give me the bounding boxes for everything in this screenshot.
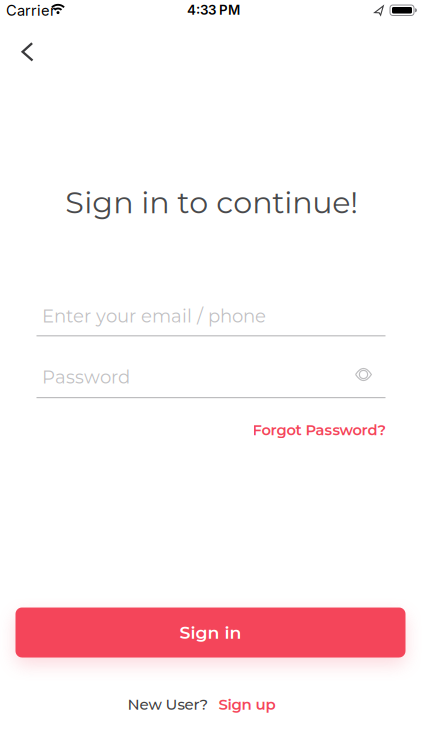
staticText: Carrier [6, 1, 56, 19]
staticText: Sign in [179, 622, 241, 643]
button[interactable]: Show password [349, 362, 378, 386]
button[interactable]: Password [36, 357, 386, 397]
button[interactable]: Enter your email / phone [36, 296, 386, 336]
button[interactable]: Back [13, 33, 49, 69]
button[interactable]: Sign in [15, 607, 405, 657]
button[interactable]: Forgot Password? [248, 417, 390, 443]
staticText: Enter your email / phone [42, 305, 266, 327]
staticText: Sign in to continue! [65, 184, 358, 221]
button[interactable]: Sign up [218, 695, 275, 714]
staticText: 4:33 PM [187, 2, 240, 18]
staticText: Password [42, 366, 130, 388]
staticText: New User? [127, 695, 208, 714]
staticText: Forgot Password? [252, 421, 386, 439]
staticText: Sign up [218, 695, 275, 714]
